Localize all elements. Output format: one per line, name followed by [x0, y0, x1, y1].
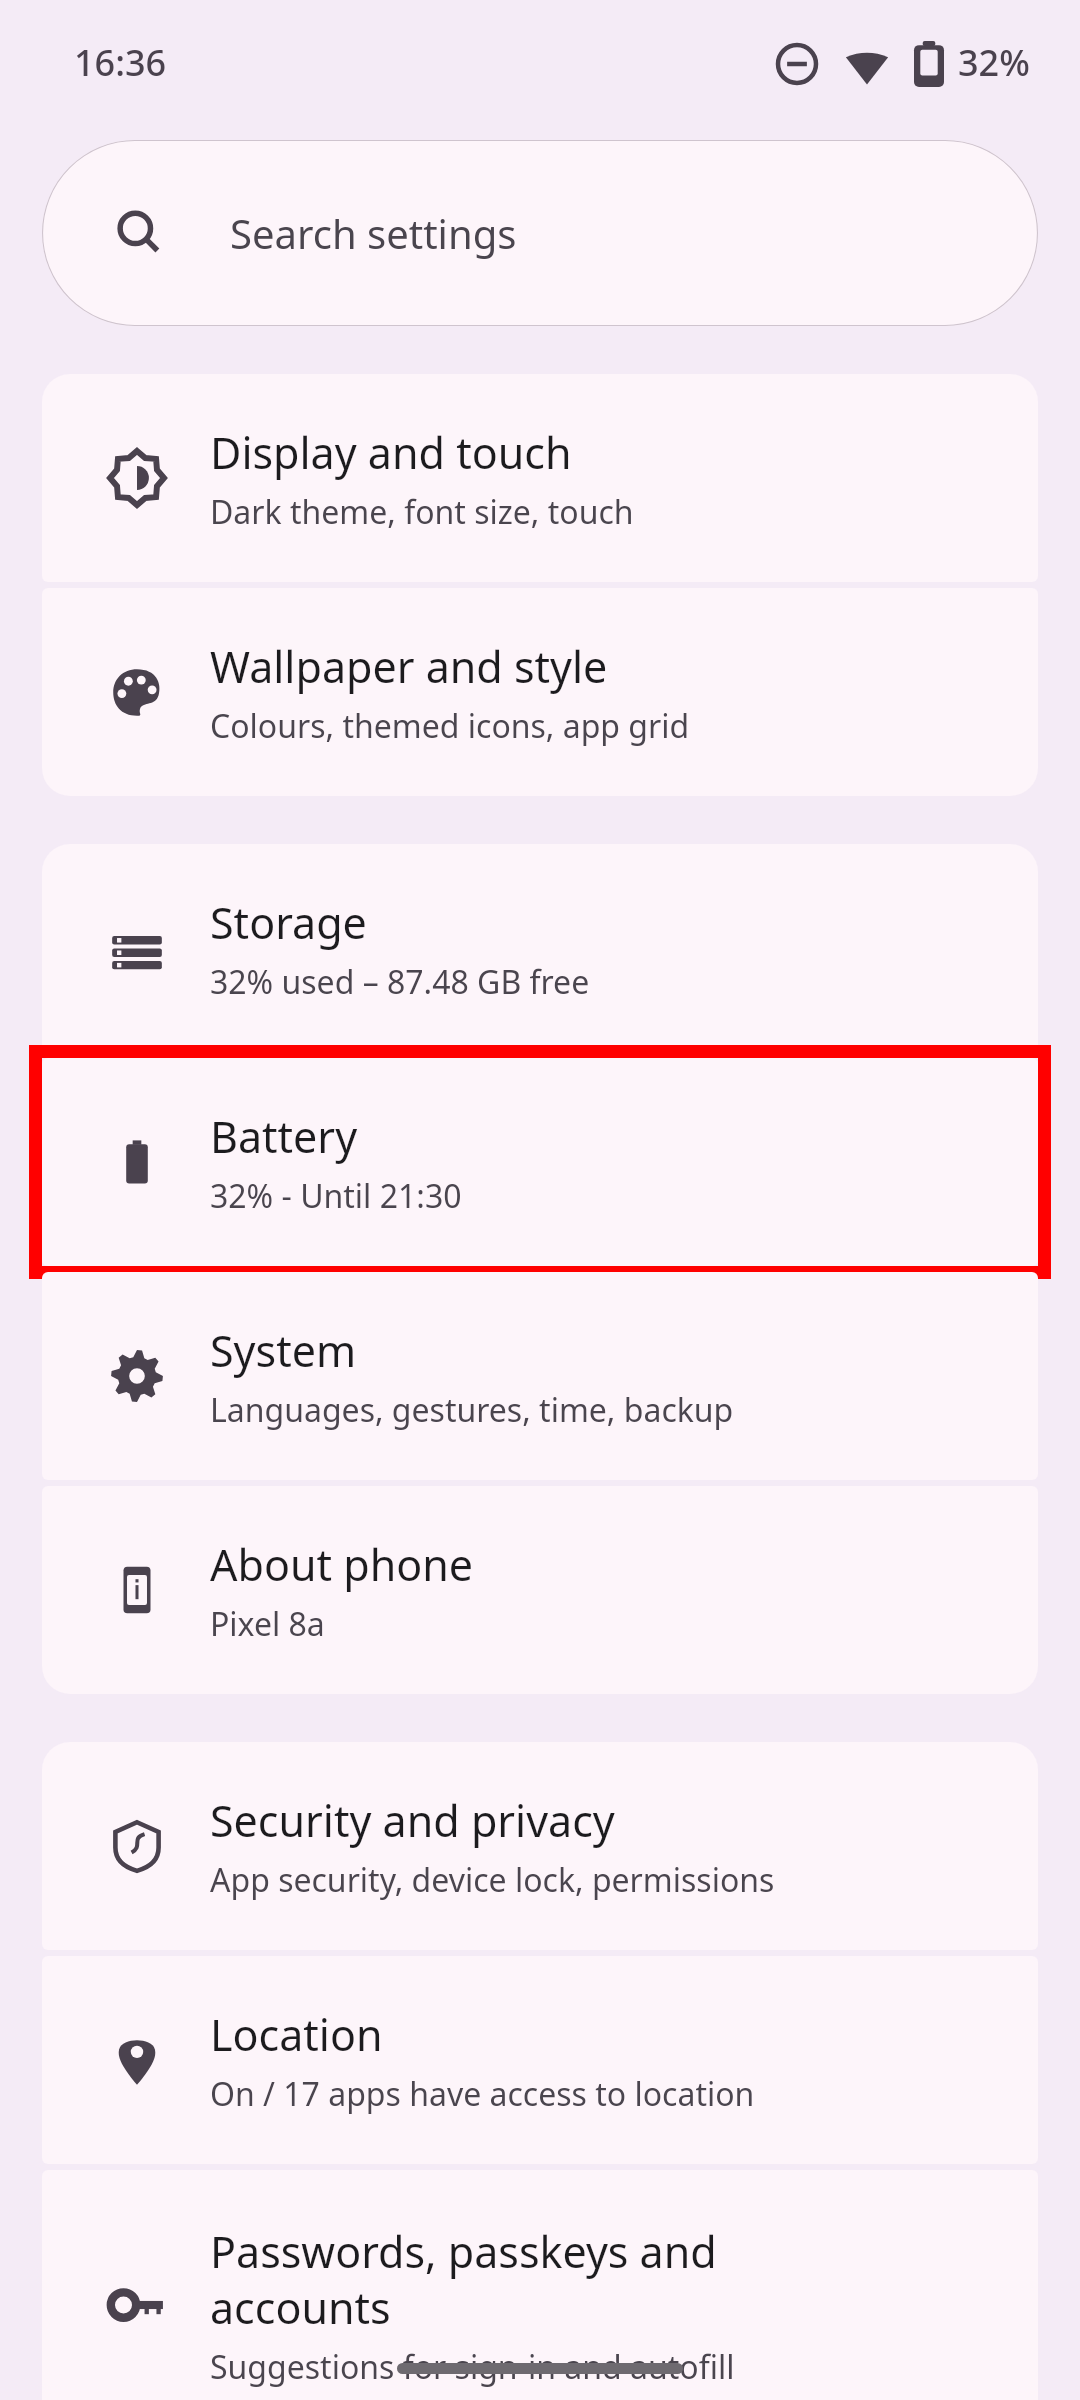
button[interactable]: Security and privacy [42, 1742, 1038, 1950]
staticText: Display and touch [210, 423, 572, 482]
staticText: Storage [210, 893, 367, 952]
staticText: Security and privacy [210, 1791, 615, 1850]
staticText: Colours, themed icons, app grid [210, 704, 690, 748]
button[interactable]: Display and touch [42, 374, 1038, 582]
staticText: 32% - Until 21:30 [210, 1174, 462, 1218]
button[interactable]: Location [42, 1956, 1038, 2164]
staticText: Location [210, 2005, 383, 2064]
staticText: 32% used – 87.48 GB free [210, 960, 590, 1004]
staticText: Battery [210, 1107, 358, 1166]
button[interactable]: About phone [42, 1486, 1038, 1694]
staticText: On / 17 apps have access to location [210, 2072, 755, 2116]
staticText: 16:36 [74, 38, 167, 87]
staticText: Passwords, passkeys and accounts [210, 2222, 717, 2337]
staticText: Search settings [230, 206, 517, 260]
button[interactable]: Battery [42, 1058, 1038, 1266]
staticText: Suggestions for sign-in and autofill [210, 2345, 735, 2389]
staticText: Languages, gestures, time, backup [210, 1388, 734, 1432]
staticText: App security, device lock, permissions [210, 1858, 775, 1902]
staticText: Dark theme, font size, touch [210, 490, 634, 534]
staticText: Pixel 8a [210, 1602, 325, 1646]
button[interactable]: System [42, 1272, 1038, 1480]
staticText: 32% [958, 38, 1030, 87]
button[interactable]: Search settings [42, 140, 1038, 326]
button[interactable]: Wallpaper and style [42, 588, 1038, 796]
staticText: About phone [210, 1535, 474, 1594]
staticText: Wallpaper and style [210, 637, 608, 696]
button[interactable]: Passwords, passkeys and accounts [42, 2170, 1038, 2400]
button[interactable]: Storage [42, 844, 1038, 1052]
staticText: System [210, 1321, 357, 1380]
